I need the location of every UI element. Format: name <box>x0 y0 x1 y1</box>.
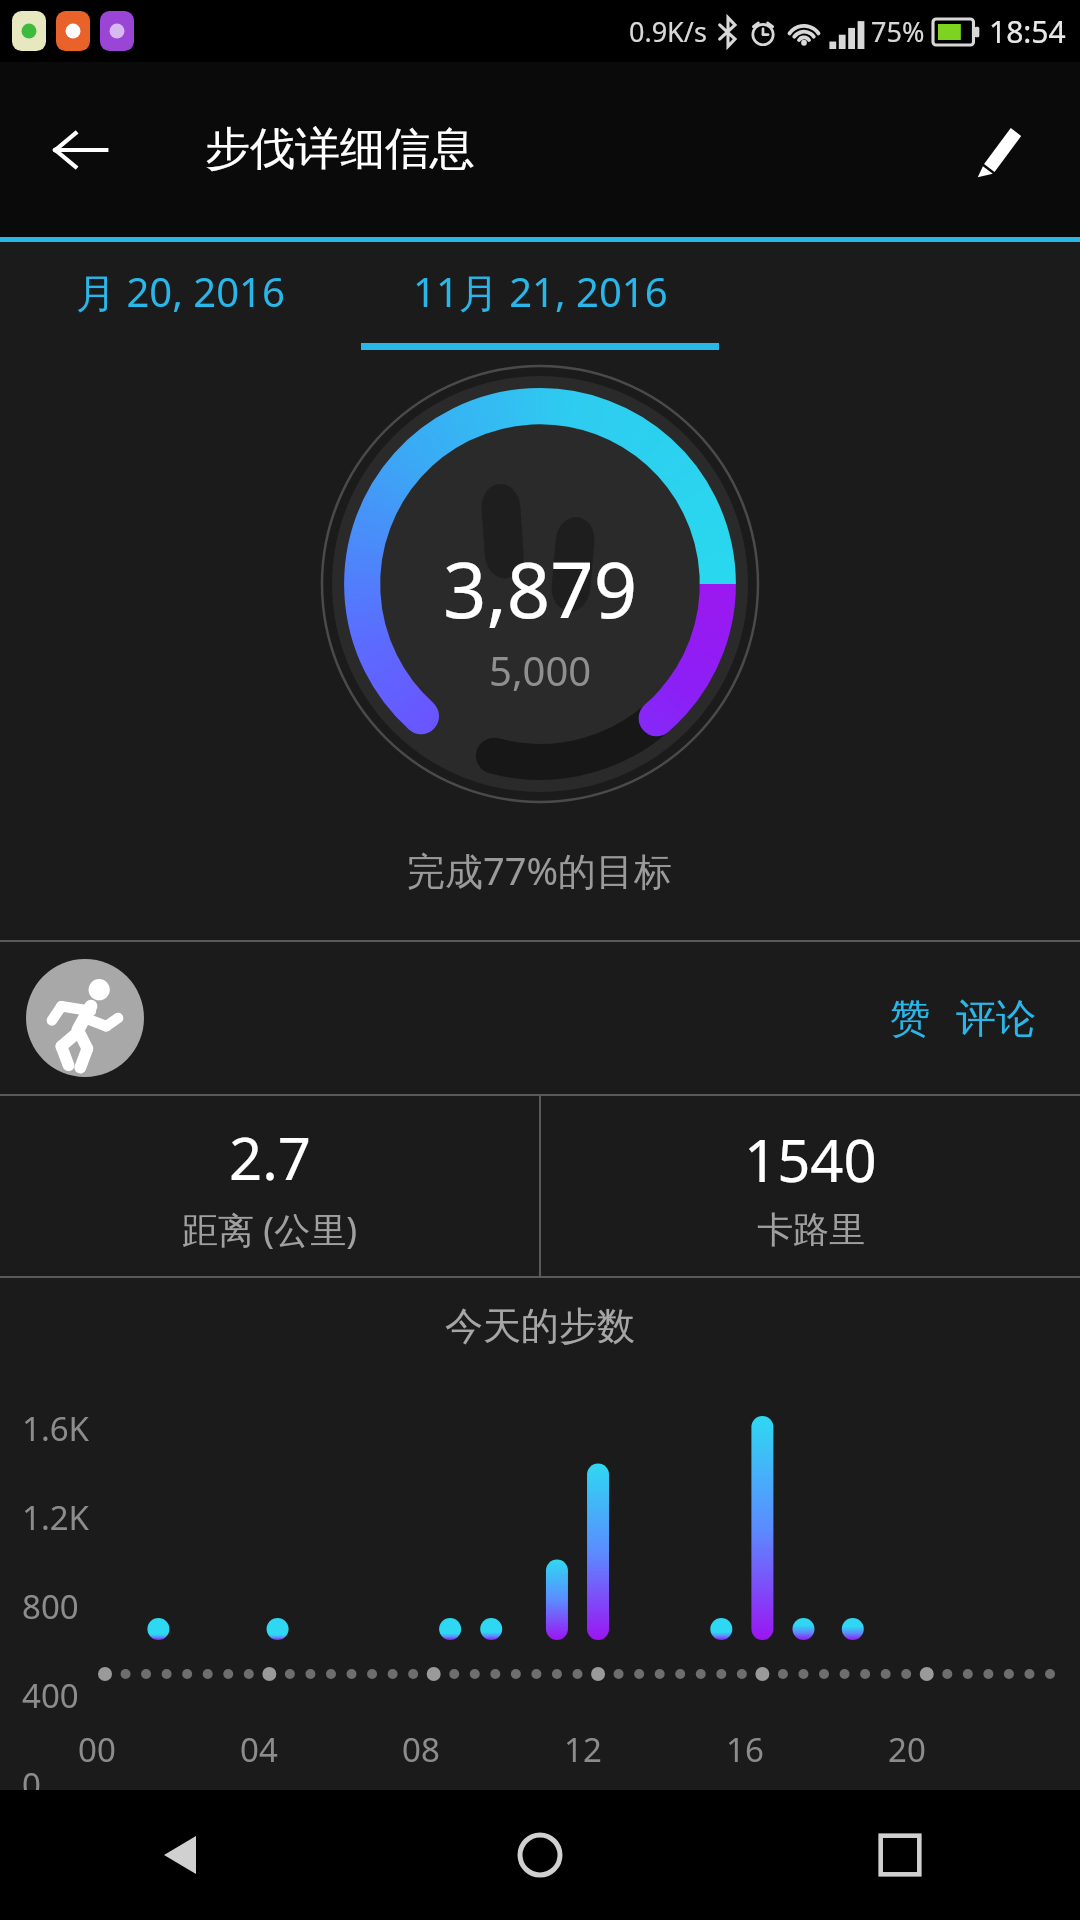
staticText: 800 <box>22 1584 79 1629</box>
staticText: 评论 <box>956 993 1036 1043</box>
staticText: 16 <box>726 1727 764 1772</box>
staticText: 步伐详细信息 <box>205 121 475 178</box>
button[interactable]: Recent apps <box>720 1790 1080 1920</box>
button[interactable]: 11月 21, 2016 <box>360 242 720 350</box>
button[interactable]: 1540 <box>541 1096 1080 1276</box>
button[interactable]: 月 20, 2016 <box>0 242 360 350</box>
staticText: 2.7 <box>229 1118 311 1197</box>
staticText: 1.2K <box>22 1495 90 1540</box>
staticText: 400 <box>22 1673 79 1718</box>
staticText: 12 <box>564 1727 602 1772</box>
staticText: 0 <box>22 1762 41 1790</box>
button[interactable]: Back <box>0 1790 360 1920</box>
staticText: 3,879 <box>443 537 638 641</box>
staticText: 20 <box>888 1727 926 1772</box>
staticText: 今天的步数 <box>445 1302 635 1350</box>
staticText: 04 <box>240 1727 278 1772</box>
staticText: 距离 (公里) <box>182 1205 357 1254</box>
staticText: 月 20, 2016 <box>76 264 285 319</box>
button[interactable]: Edit <box>958 110 1038 190</box>
staticText: 完成77%的目标 <box>407 844 673 896</box>
button[interactable]: 评论 <box>950 985 1042 1051</box>
staticText: 00 <box>78 1727 116 1772</box>
staticText: 0.9K/s <box>629 13 707 50</box>
button[interactable]: 2.7 <box>0 1096 539 1276</box>
button[interactable]: Home <box>360 1790 720 1920</box>
staticText: 11月 21, 2016 <box>413 264 668 319</box>
staticText: 08 <box>402 1727 440 1772</box>
staticText: 卡路里 <box>757 1207 865 1252</box>
button[interactable]: Activity <box>26 959 144 1077</box>
staticText: 18:54 <box>989 11 1066 52</box>
staticText: 5,000 <box>489 643 592 697</box>
button[interactable]: Back <box>40 110 120 190</box>
button[interactable]: 赞 <box>884 985 936 1051</box>
staticText: 75% <box>871 13 925 50</box>
staticText: 赞 <box>890 993 930 1043</box>
staticText: 1.6K <box>22 1406 90 1451</box>
staticText: 1540 <box>744 1120 877 1199</box>
button[interactable]: 3,879 <box>320 364 760 804</box>
